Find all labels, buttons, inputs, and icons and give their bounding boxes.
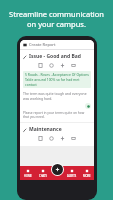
button[interactable]: Action 4 bbox=[71, 136, 76, 141]
button[interactable]: HOME bbox=[20, 166, 35, 180]
button[interactable]: Action 3 bbox=[60, 63, 65, 68]
staticText: ALERTS bbox=[67, 174, 77, 178]
button[interactable]: Action 2 bbox=[49, 136, 54, 141]
staticText: MORE bbox=[83, 174, 91, 178]
button[interactable]: Create Report bbox=[20, 40, 94, 49]
staticText: The term was quite tough and everyone wa… bbox=[23, 91, 91, 101]
button[interactable]: Action 3 bbox=[60, 136, 65, 141]
button[interactable]: CHATS bbox=[35, 166, 50, 180]
button[interactable]: ALERTS bbox=[64, 166, 79, 180]
button[interactable]: Maintenance bbox=[20, 123, 94, 146]
staticText: HOME bbox=[24, 174, 32, 178]
button[interactable]: Action 4 bbox=[71, 63, 76, 68]
button[interactable]: Reaction bbox=[85, 103, 91, 109]
staticText: Maintenance bbox=[29, 126, 62, 133]
staticText: Issue - Good and Bad bbox=[29, 53, 81, 60]
staticText: Streamline communication on your campus. bbox=[6, 9, 107, 29]
staticText: CHATS bbox=[39, 174, 47, 178]
button[interactable]: Issue - Good and Bad bbox=[20, 50, 94, 122]
staticText: Create Report bbox=[29, 42, 56, 47]
button[interactable]: Action 1 bbox=[38, 136, 43, 141]
staticText: Please report in your terms quite on how… bbox=[23, 111, 91, 119]
button[interactable]: Add report bbox=[52, 164, 63, 175]
button[interactable]: Action 1 bbox=[38, 63, 43, 68]
staticText: 5 Roads - Roses - Acceptance Of Options bbox=[25, 72, 89, 77]
button[interactable]: Action 2 bbox=[49, 63, 54, 68]
button[interactable]: MORE bbox=[79, 166, 94, 180]
staticText: Table around 100% so far had met contact bbox=[25, 77, 89, 87]
